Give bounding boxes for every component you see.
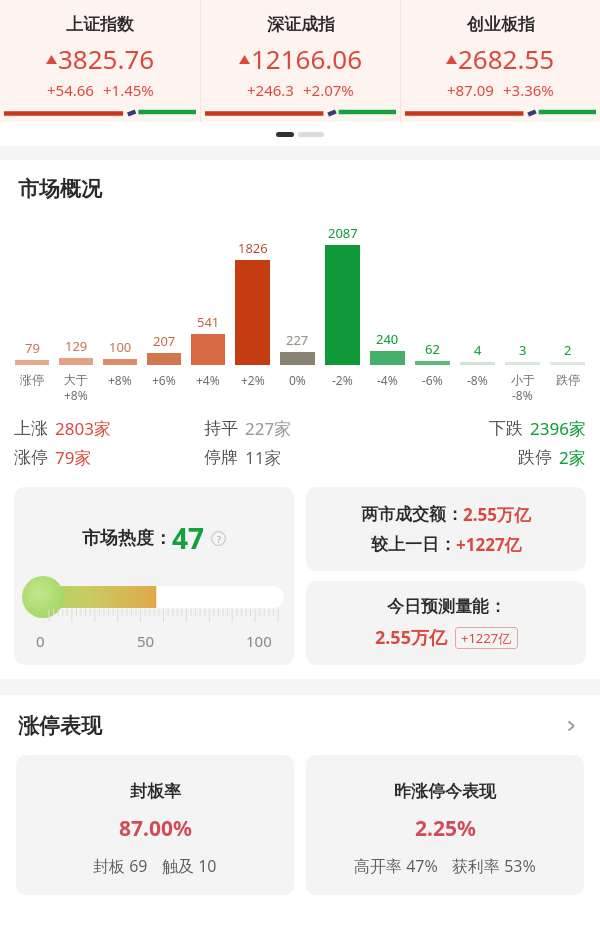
staticText: -4% [377, 372, 398, 388]
staticText: +2.07% [303, 80, 354, 100]
staticText: +87.09 [447, 80, 494, 100]
staticText: ? [217, 533, 221, 545]
staticText: 2.55万亿 [375, 625, 447, 650]
staticText: +8% [64, 387, 88, 403]
button[interactable]: 上证指数 [0, 0, 200, 117]
staticText: 市场热度： [82, 527, 172, 550]
staticText: 4 [474, 341, 482, 359]
staticText: 50 [137, 631, 155, 651]
staticText: 3825.76 [58, 41, 155, 76]
staticText: 2.25% [415, 814, 476, 843]
staticText: 100 [109, 338, 132, 356]
staticText: +4% [196, 372, 220, 388]
staticText: 高开率 47% [354, 855, 438, 877]
staticText: 昨涨停今表现 [394, 781, 496, 802]
staticText: -8% [467, 372, 488, 388]
staticText: 2.55万亿 [463, 503, 531, 526]
staticText: +3.36% [503, 80, 554, 100]
staticText: 79家 [55, 446, 92, 469]
staticText: 停牌 [204, 447, 238, 468]
staticText: 创业板指 [467, 14, 535, 35]
staticText: 79 [25, 339, 40, 357]
button[interactable]: 说明 [211, 531, 226, 546]
button[interactable]: 深证成指 [201, 0, 400, 117]
staticText: 227 [286, 331, 309, 349]
staticText: 封板率 [130, 781, 181, 802]
staticText: 2 [564, 341, 572, 359]
staticText: +1.45% [103, 80, 154, 100]
staticText: +246.3 [247, 80, 294, 100]
staticText: 跌停 [518, 447, 552, 468]
button[interactable]: 涨停表现 [0, 709, 600, 743]
staticText: -6% [422, 372, 443, 388]
staticText: 较上一日： [371, 534, 456, 555]
staticText: +54.66 [47, 80, 94, 100]
staticText: +6% [152, 372, 176, 388]
staticText: 207 [153, 332, 176, 350]
other: 查看更多 [560, 715, 582, 737]
staticText: 今日预测量能： [387, 596, 506, 617]
staticText: +1227亿 [461, 629, 512, 647]
staticText: 2家 [559, 446, 586, 469]
staticText: 上证指数 [66, 14, 134, 35]
staticText: 2087 [328, 224, 358, 242]
staticText: 100 [246, 631, 272, 651]
staticText: +2% [241, 372, 265, 388]
staticText: 大于 [64, 372, 88, 387]
staticText: -2% [332, 372, 353, 388]
staticText: 11家 [245, 446, 282, 469]
staticText: 2396家 [530, 417, 586, 440]
staticText: 下跌 [489, 418, 523, 439]
staticText: 129 [65, 337, 88, 355]
staticText: 2803家 [55, 417, 111, 440]
staticText: 0% [289, 372, 306, 388]
staticText: 240 [376, 330, 399, 348]
staticText: 87.00% [119, 814, 192, 843]
staticText: 涨停表现 [18, 713, 102, 739]
staticText: 涨停 [14, 447, 48, 468]
staticText: 227家 [245, 417, 292, 440]
staticText: 62 [425, 340, 440, 358]
staticText: 上涨 [14, 418, 48, 439]
button[interactable]: 两市成交额： [306, 487, 586, 571]
staticText: 小于 [511, 372, 535, 387]
staticText: 持平 [204, 418, 238, 439]
staticText: 触及 10 [162, 855, 217, 877]
button[interactable]: 昨涨停今表现 [306, 755, 584, 895]
staticText: 541 [197, 313, 220, 331]
staticText: 12166.06 [251, 41, 363, 76]
staticText: 两市成交额： [361, 504, 463, 525]
button[interactable]: 今日预测量能： [306, 581, 586, 665]
staticText: +1227亿 [456, 533, 522, 556]
button[interactable]: 封板率 [16, 755, 294, 895]
staticText: 市场概况 [18, 176, 102, 202]
staticText: 封板 69 [93, 855, 148, 877]
staticText: 跌停 [556, 372, 580, 387]
staticText: 涨停 [20, 372, 44, 387]
staticText: 2682.55 [458, 41, 555, 76]
staticText: -8% [512, 387, 533, 403]
staticText: 0 [36, 631, 45, 651]
button[interactable]: 市场热度： [14, 487, 294, 665]
button[interactable]: 创业板指 [401, 0, 600, 117]
staticText: 1826 [238, 239, 268, 257]
staticText: 获利率 53% [452, 855, 536, 877]
staticText: 深证成指 [267, 14, 335, 35]
staticText: 47 [172, 519, 205, 557]
staticText: +8% [108, 372, 132, 388]
staticText: 3 [519, 341, 527, 359]
